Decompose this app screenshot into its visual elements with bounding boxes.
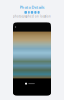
button[interactable]: Action — [28, 11, 30, 14]
button[interactable]: Play — [25, 83, 27, 85]
button[interactable]: Close — [13, 22, 18, 32]
button[interactable]: Photo Details — [19, 4, 44, 10]
button[interactable]: Action — [31, 11, 33, 14]
staticText: photographed on location — [13, 15, 51, 18]
button[interactable]: Action — [34, 11, 36, 14]
staticText: Photo Details — [19, 4, 44, 10]
button[interactable]: Action — [38, 11, 40, 14]
button[interactable]: Action — [24, 11, 27, 14]
